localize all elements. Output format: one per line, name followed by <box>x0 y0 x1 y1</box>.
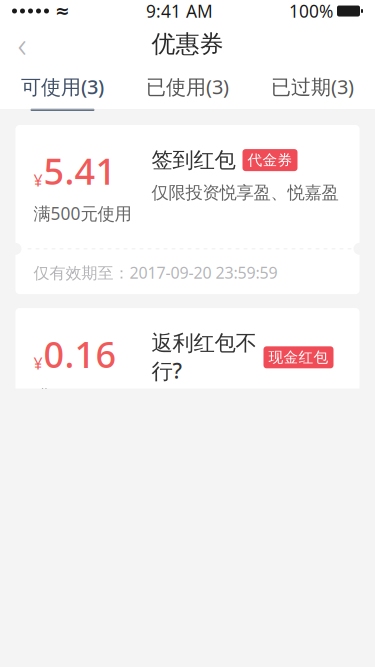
staticText: ¥ <box>33 170 42 191</box>
staticText: 已使用(3) <box>146 73 229 100</box>
staticText: 现金红包 <box>268 348 328 366</box>
staticText: 返利红包不行? <box>151 330 256 385</box>
button[interactable]: ¥ <box>0 125 375 294</box>
staticText: 100% <box>289 0 333 22</box>
staticText: 仅限投资悦享盈、悦嘉盈 <box>151 182 338 203</box>
button[interactable]: 可使用(3) <box>0 66 125 110</box>
staticText: 仅有效期至：2017-09-20 23:59:59 <box>33 262 277 283</box>
staticText: 满0元使用 <box>33 385 111 408</box>
button[interactable]: Back <box>0 22 44 66</box>
staticText: 代金券 <box>247 151 292 169</box>
staticText: 可使用(3) <box>21 73 104 100</box>
staticText: ¥ <box>33 353 42 374</box>
staticText: ‹ <box>17 21 26 67</box>
staticText: 0.16 <box>43 330 116 378</box>
staticText: 已过期(3) <box>271 73 354 100</box>
staticText: 优惠券 <box>151 29 223 59</box>
staticText: ≈ <box>55 1 70 21</box>
button[interactable]: 已使用(3) <box>125 66 250 110</box>
staticText: 9:41 AM <box>146 0 213 22</box>
staticText: 满500元使用 <box>33 202 131 225</box>
button[interactable]: ¥ <box>0 308 375 505</box>
staticText: 签到红包 <box>151 147 235 173</box>
staticText: 5.41 <box>43 147 116 195</box>
button[interactable]: 已过期(3) <box>250 66 375 110</box>
